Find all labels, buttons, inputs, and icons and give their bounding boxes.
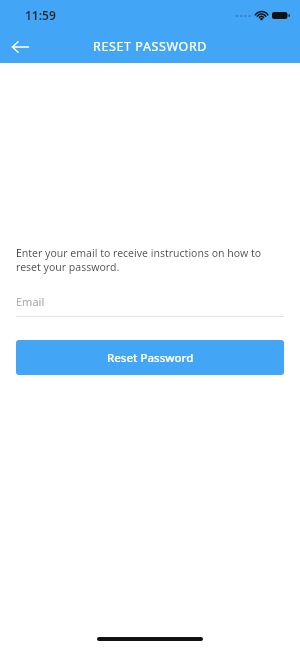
staticText: Reset Password (107, 350, 194, 366)
button[interactable]: Email (16, 294, 284, 317)
staticText: 11:59 (25, 7, 56, 23)
staticText: Email (16, 294, 45, 309)
button[interactable]: Reset Password (16, 340, 284, 375)
staticText: RESET PASSWORD (93, 38, 207, 55)
staticText: Enter your email to receive instructions… (16, 246, 278, 274)
button[interactable]: Back (0, 30, 40, 63)
